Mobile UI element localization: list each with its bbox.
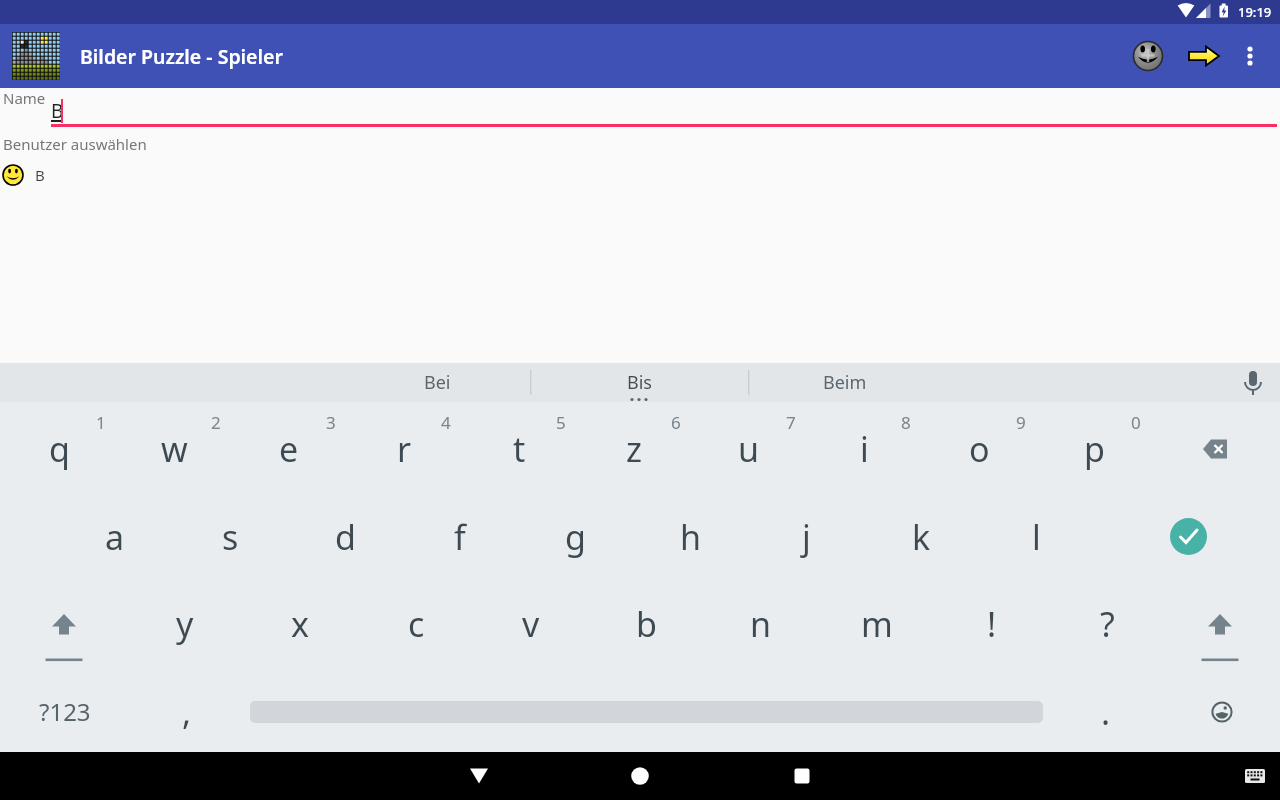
staticText: Bei [424,370,451,395]
button[interactable]: f [410,493,510,580]
staticText: o [969,426,990,472]
staticText: 1 [96,411,106,434]
button[interactable] [1166,405,1266,492]
button[interactable]: ?123 [15,668,115,755]
button[interactable]: h [641,493,741,580]
button[interactable]: p [1044,405,1144,492]
staticText: g [565,514,586,560]
staticText: 19:19 [1238,3,1272,21]
button[interactable]: n [711,580,811,667]
button[interactable] [1230,752,1280,800]
staticText: y [176,601,194,647]
button[interactable]: z [584,405,684,492]
button[interactable]: Bei [377,363,497,402]
button[interactable]: d [295,493,395,580]
staticText: B [35,165,45,185]
staticText: w [161,426,188,472]
button[interactable] [604,752,676,800]
staticText: 9 [1016,411,1026,434]
staticText: B [51,98,64,124]
staticText: a [105,514,125,560]
button[interactable] [443,752,515,800]
button[interactable]: k [871,493,971,580]
staticText: e [279,426,299,472]
staticText: h [680,514,702,560]
staticText: 8 [901,411,911,434]
staticText: v [522,601,540,647]
button[interactable] [766,752,838,800]
staticText: m [861,601,893,647]
staticText: Name [3,88,46,108]
button[interactable]: Bis [579,363,699,402]
button[interactable]: B [0,158,220,192]
staticText: b [636,601,657,647]
button[interactable]: q [9,405,109,492]
staticText: 2 [211,411,221,434]
button[interactable]: , [137,668,237,755]
staticText: c [408,601,425,647]
staticText: z [626,426,642,472]
staticText: ? [1100,601,1115,647]
button[interactable] [1124,32,1172,80]
staticText: u [738,426,760,472]
button[interactable]: x [250,580,350,667]
button[interactable]: u [699,405,799,492]
button[interactable] [1180,32,1228,80]
button[interactable]: m [827,580,927,667]
button[interactable]: v [481,580,581,667]
staticText: t [513,426,526,472]
staticText: ! [987,601,997,647]
staticText: 7 [786,411,796,434]
staticText: s [222,514,239,560]
button[interactable] [1180,668,1264,755]
button[interactable]: l [986,493,1086,580]
button[interactable]: b [596,580,696,667]
button[interactable]: y [135,580,235,667]
button[interactable]: s [180,493,280,580]
staticText: Benutzer auswählen [3,134,147,154]
staticText: p [1084,426,1105,472]
staticText: Bis [627,370,652,395]
staticText: . [1101,689,1111,735]
button[interactable]: g [525,493,625,580]
button[interactable] [1170,580,1270,667]
button[interactable]: o [929,405,1029,492]
button[interactable]: r [354,405,454,492]
staticText: ?123 [39,695,91,728]
button[interactable]: e [239,405,339,492]
button[interactable]: . [1056,668,1156,755]
button[interactable]: a [65,493,165,580]
staticText: f [454,514,466,560]
button[interactable]: ! [942,580,1042,667]
staticText: x [291,601,309,647]
button[interactable]: j [756,493,856,580]
button[interactable] [1226,32,1274,80]
button[interactable]: Beim [785,363,905,402]
button[interactable]: t [469,405,569,492]
staticText: 5 [556,411,566,434]
staticText: d [335,514,356,560]
button[interactable] [12,32,60,80]
staticText: q [49,426,70,472]
staticText: 3 [326,411,336,434]
staticText: j [802,514,811,560]
staticText: Bilder Puzzle - Spieler [80,43,283,70]
staticText: n [750,601,772,647]
staticText: 4 [441,411,451,434]
button[interactable]: i [814,405,914,492]
button[interactable] [14,580,114,667]
staticText: r [397,426,412,472]
staticText: i [860,426,869,472]
button[interactable]: c [366,580,466,667]
staticText: k [912,514,931,560]
staticText: Beim [823,370,867,395]
staticText: 6 [671,411,681,434]
staticText: 0 [1131,411,1141,434]
button[interactable]: ? [1057,580,1157,667]
staticText: , [182,689,192,735]
button[interactable] [1152,493,1224,580]
button[interactable]: w [124,405,224,492]
staticText: l [1032,514,1041,560]
